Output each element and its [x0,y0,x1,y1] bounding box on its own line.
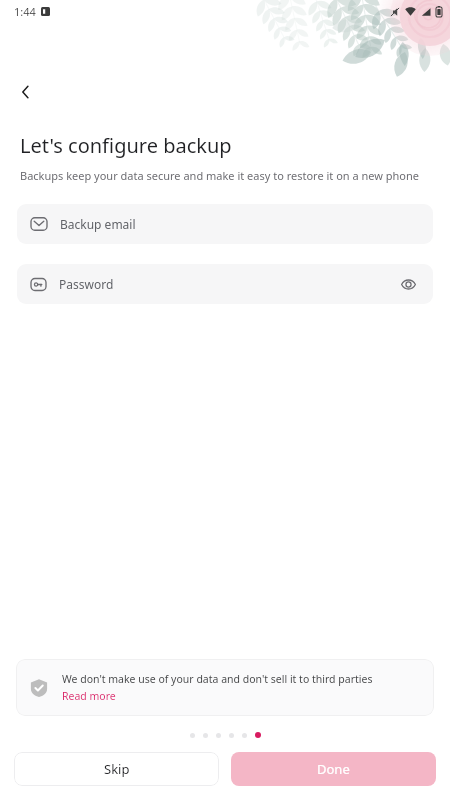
button[interactable]: Password [17,264,433,304]
button[interactable]: Backup email [17,204,433,244]
staticText: Let's configure backup [20,132,232,159]
staticText: We don't make use of your data and don't… [62,672,373,686]
button[interactable]: Show password [395,271,421,297]
staticText: Password [59,276,395,292]
button[interactable]: We don't make use of your data and don't… [16,659,434,716]
button[interactable]: Done [231,752,436,786]
staticText: 1:44 [14,4,36,19]
button[interactable]: Read more [62,689,116,703]
staticText: Skip [104,760,130,778]
button[interactable]: Back [8,74,44,110]
button[interactable]: Skip [14,752,219,786]
staticText: Done [317,760,350,778]
staticText: Backup email [60,216,136,232]
staticText: Backups keep your data secure and make i… [20,168,420,183]
